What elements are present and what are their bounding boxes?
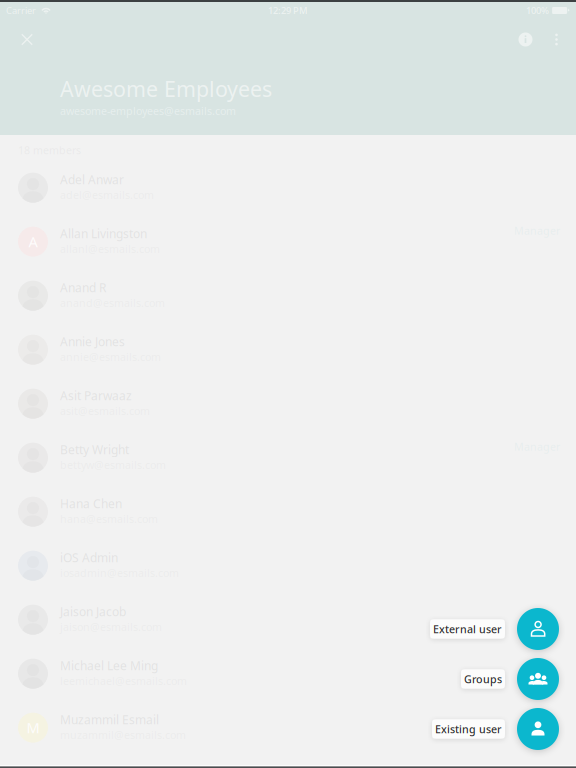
staticText: Hana Chen	[60, 496, 122, 512]
staticText: Betty Wright	[60, 442, 129, 458]
staticText: Jaison Jacob	[60, 604, 126, 620]
staticText: awesome-employees@esmails.com	[60, 104, 236, 118]
staticText: Asit Parwaaz	[60, 388, 132, 404]
staticText: A	[28, 232, 37, 251]
staticText: iOS Admin	[60, 550, 118, 566]
staticText: Adel Anwar	[60, 172, 124, 188]
staticText: 100%	[526, 4, 549, 17]
staticText: M	[26, 718, 39, 737]
button[interactable]: Jaison Jacob	[0, 593, 576, 647]
staticText: Allan Livingston	[60, 226, 147, 242]
staticText: Manager	[514, 439, 560, 454]
button[interactable]: External user	[430, 619, 505, 639]
button[interactable]: Groups	[517, 658, 559, 700]
button[interactable]: M	[0, 701, 576, 755]
staticText: External user	[433, 622, 502, 636]
staticText: Annie Jones	[60, 334, 125, 350]
staticText: 12:29 PM	[268, 4, 308, 17]
staticText: Awesome Employees	[60, 74, 272, 103]
button[interactable]: Michael Lee Ming	[0, 647, 576, 701]
button[interactable]: Existing user	[517, 708, 559, 750]
staticText: Manager	[514, 223, 560, 238]
staticText: Existing user	[435, 722, 502, 736]
button[interactable]: Information	[513, 19, 538, 60]
button[interactable]: Existing user	[432, 719, 505, 739]
staticText: Anand R	[60, 280, 106, 296]
button[interactable]: External user	[517, 608, 559, 650]
staticText: Groups	[464, 672, 502, 686]
staticText: Muzammil Esmail	[60, 712, 159, 728]
staticText: Carrier	[6, 4, 36, 17]
staticText: Michael Lee Ming	[60, 658, 158, 674]
button[interactable]: Groups	[461, 669, 505, 689]
